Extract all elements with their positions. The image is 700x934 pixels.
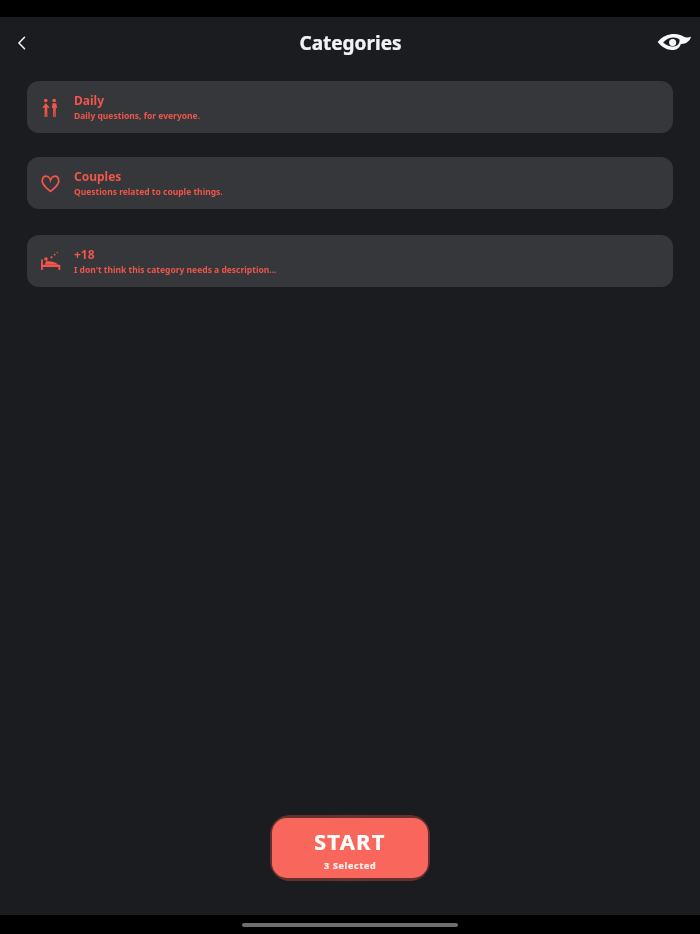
button[interactable]: App logo — [652, 21, 696, 65]
staticText: I don't think this category needs a desc… — [74, 264, 277, 276]
button[interactable]: Couples — [27, 157, 673, 209]
staticText: Categories — [299, 30, 402, 56]
button[interactable]: START — [272, 818, 428, 878]
button[interactable]: +18 — [27, 235, 673, 287]
staticText: Questions related to couple things. — [74, 186, 223, 198]
staticText: +18 — [74, 246, 95, 262]
staticText: Daily — [74, 92, 104, 108]
button[interactable]: Daily — [27, 81, 673, 133]
staticText: Daily questions, for everyone. — [74, 110, 201, 122]
staticText: START — [314, 826, 386, 856]
staticText: 3 Selected — [324, 859, 377, 871]
staticText: Couples — [74, 168, 122, 184]
button[interactable]: Back — [0, 21, 44, 65]
